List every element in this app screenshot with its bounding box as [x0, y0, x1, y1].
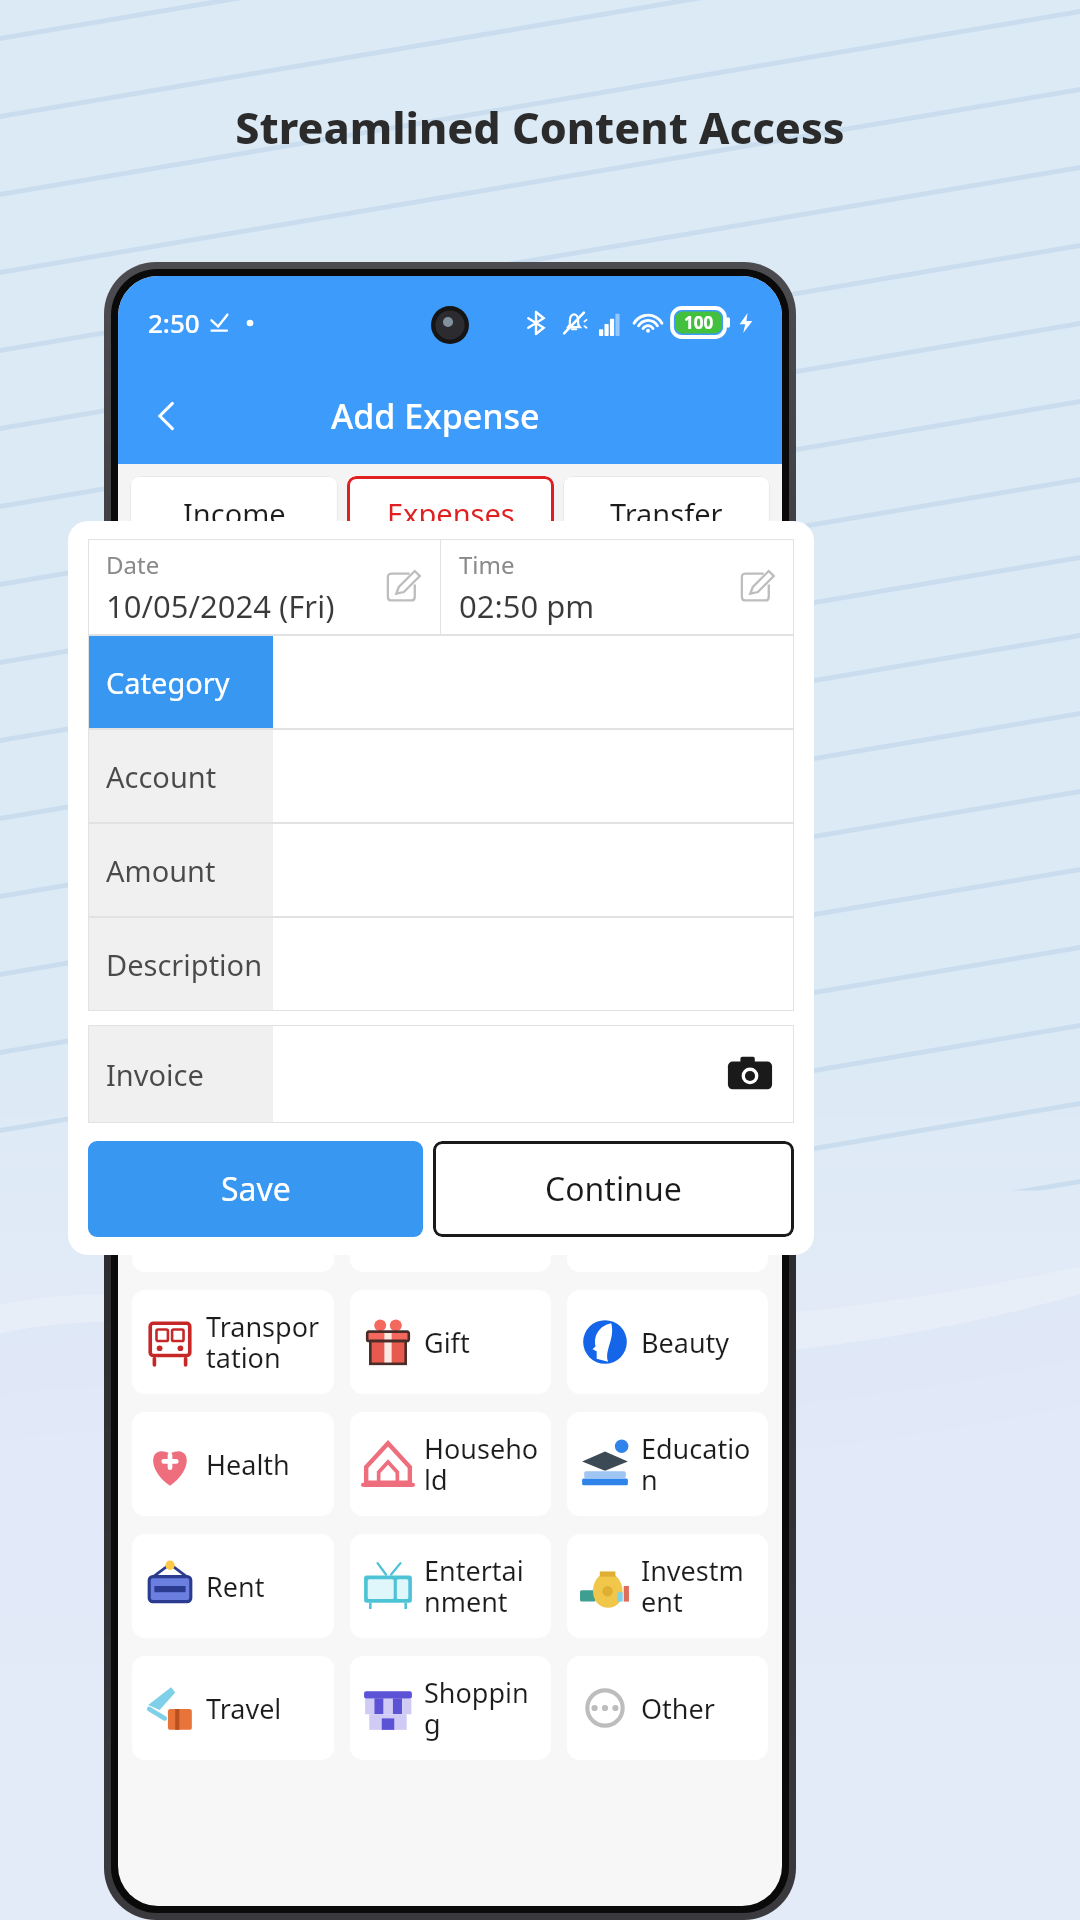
- staticText: 10/05/2024 (Fri): [106, 585, 335, 627]
- button[interactable]: Food: [132, 1168, 334, 1272]
- button[interactable]: Self-development: [567, 1168, 768, 1272]
- button[interactable]: Gift: [350, 1290, 551, 1394]
- staticText: Self-development: [641, 1186, 756, 1254]
- staticText: Time: [459, 548, 515, 581]
- staticText: Invoice: [106, 1055, 204, 1094]
- button[interactable]: Education: [567, 1412, 768, 1516]
- staticText: Entertainment: [424, 1552, 539, 1620]
- staticText: Save: [221, 1167, 291, 1211]
- button[interactable]: Household: [350, 1412, 551, 1516]
- button[interactable]: Transfer: [563, 476, 770, 550]
- button[interactable]: Rent: [132, 1534, 334, 1638]
- staticText: Date: [106, 548, 160, 581]
- staticText: Transportation: [206, 1308, 322, 1376]
- button[interactable]: Income: [130, 476, 338, 550]
- staticText: Description: [106, 945, 263, 984]
- staticText: Transfer: [610, 494, 723, 533]
- staticText: 100: [684, 311, 714, 334]
- staticText: Rent: [206, 1568, 265, 1605]
- staticText: Category: [106, 663, 230, 702]
- button[interactable]: Health: [132, 1412, 334, 1516]
- staticText: Travel: [206, 1690, 282, 1727]
- staticText: Account: [106, 757, 217, 796]
- staticText: Household: [424, 1430, 539, 1498]
- button[interactable]: Expenses: [347, 476, 554, 550]
- button[interactable]: Investment: [567, 1534, 768, 1638]
- staticText: 02:50 pm: [459, 585, 595, 627]
- button[interactable]: Beauty: [567, 1290, 768, 1394]
- button[interactable]: Amount: [88, 823, 794, 917]
- button[interactable]: Time: [441, 539, 794, 635]
- staticText: Education: [641, 1430, 756, 1498]
- staticText: Income: [183, 494, 286, 533]
- button[interactable]: Travel: [132, 1656, 334, 1760]
- button[interactable]: Social Life: [350, 1168, 551, 1272]
- button[interactable]: Invoice: [88, 1025, 794, 1123]
- button[interactable]: Continue: [433, 1141, 794, 1237]
- staticText: Shopping: [424, 1674, 539, 1742]
- staticText: Food: [206, 1202, 270, 1239]
- button[interactable]: Shopping: [350, 1656, 551, 1760]
- button[interactable]: Save: [88, 1141, 423, 1237]
- staticText: Expenses: [387, 494, 515, 533]
- button[interactable]: Back: [136, 385, 198, 447]
- staticText: Continue: [545, 1167, 682, 1211]
- staticText: Streamlined Content Access: [0, 98, 1080, 157]
- staticText: Add Expense: [331, 393, 540, 439]
- staticText: Beauty: [641, 1324, 730, 1361]
- button[interactable]: Entertainment: [350, 1534, 551, 1638]
- staticText: Social Life: [424, 1186, 539, 1254]
- button[interactable]: Account: [88, 729, 794, 823]
- button[interactable]: Category: [88, 635, 794, 729]
- staticText: 2:50: [148, 305, 200, 340]
- button[interactable]: Description: [88, 917, 794, 1011]
- staticText: Investment: [641, 1552, 756, 1620]
- staticText: Amount: [106, 851, 216, 890]
- staticText: Gift: [424, 1324, 470, 1361]
- staticText: Health: [206, 1446, 290, 1483]
- button[interactable]: Date: [88, 539, 440, 635]
- staticText: Other: [641, 1690, 715, 1727]
- button[interactable]: Other: [567, 1656, 768, 1760]
- button[interactable]: Transportation: [132, 1290, 334, 1394]
- button[interactable]: Take photo: [724, 1048, 776, 1100]
